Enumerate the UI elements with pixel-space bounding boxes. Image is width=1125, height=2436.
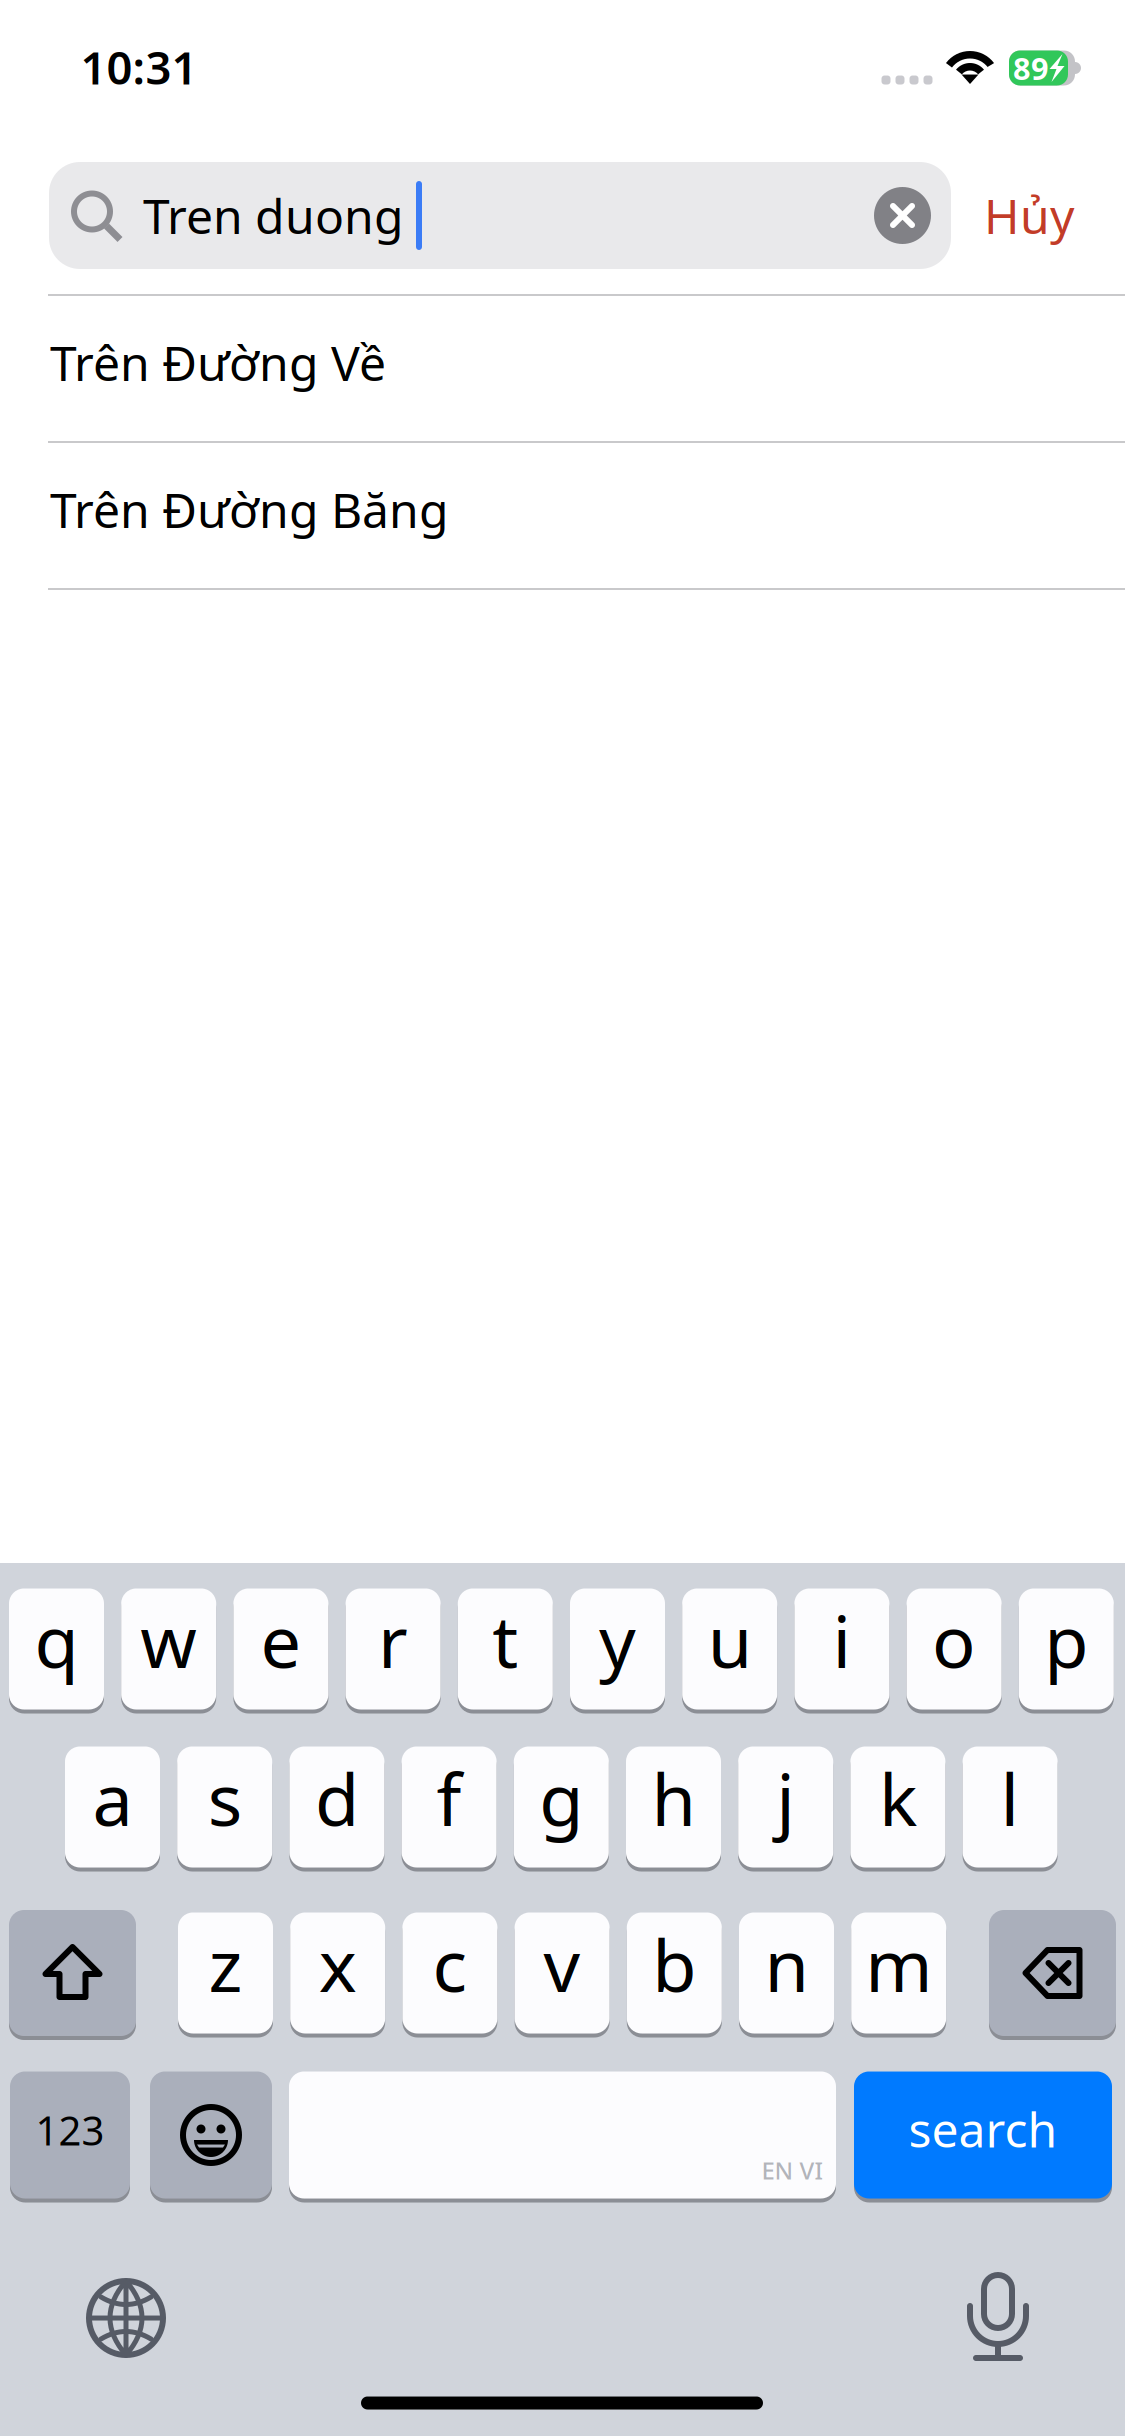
staticText: l [1001, 1750, 1020, 1846]
staticText: j [776, 1750, 795, 1846]
button[interactable]: l [963, 1744, 1058, 1869]
staticText: a [92, 1750, 132, 1846]
button[interactable]: e [233, 1586, 328, 1711]
button[interactable]: s [177, 1744, 272, 1869]
staticText: i [832, 1592, 851, 1688]
staticText: q [34, 1592, 78, 1688]
staticText: g [539, 1750, 583, 1846]
staticText: t [492, 1592, 518, 1688]
staticText: u [708, 1592, 752, 1688]
button[interactable]: m [851, 1910, 946, 2035]
button[interactable]: f [402, 1744, 497, 1869]
button[interactable]: b [627, 1910, 722, 2035]
staticText: s [208, 1750, 242, 1846]
staticText: EN VI [761, 2154, 822, 2186]
button[interactable]: v [515, 1910, 610, 2035]
button[interactable]: Delete [989, 1908, 1116, 2038]
button[interactable]: r [346, 1586, 441, 1711]
button[interactable]: i [794, 1586, 889, 1711]
staticText: c [432, 1916, 467, 2012]
button[interactable]: Trên Đường Băng [0, 443, 1125, 590]
staticText: h [651, 1750, 695, 1846]
button[interactable]: d [289, 1744, 384, 1869]
staticText: search [908, 2097, 1057, 2161]
button[interactable]: p [1019, 1586, 1114, 1711]
button[interactable]: Dictation [943, 2263, 1053, 2373]
staticText: Trên Đường Băng [50, 478, 449, 541]
button[interactable]: Shift [9, 1908, 136, 2038]
button[interactable]: Space [289, 2069, 836, 2200]
staticText: o [932, 1592, 976, 1688]
staticText: 89 [1013, 48, 1049, 88]
button[interactable]: search [854, 2069, 1112, 2200]
staticText: e [260, 1592, 301, 1688]
staticText: b [652, 1916, 696, 2012]
staticText: z [208, 1916, 242, 2012]
button[interactable]: w [121, 1586, 216, 1711]
button[interactable]: a [65, 1744, 160, 1869]
button[interactable]: Emoji [150, 2069, 272, 2200]
staticText: x [319, 1916, 357, 2012]
button[interactable]: Trên Đường Về [0, 296, 1125, 443]
button[interactable]: c [402, 1910, 497, 2035]
button[interactable]: q [9, 1586, 104, 1711]
button[interactable]: h [626, 1744, 721, 1869]
button[interactable]: Next keyboard [71, 2263, 181, 2373]
button[interactable]: u [682, 1586, 777, 1711]
staticText: Trên Đường Về [50, 331, 386, 394]
button[interactable]: x [290, 1910, 385, 2035]
staticText: Hủy [984, 184, 1074, 247]
button[interactable]: 123 [10, 2069, 130, 2200]
staticText: w [140, 1592, 197, 1688]
button[interactable]: t [458, 1586, 553, 1711]
button[interactable]: o [907, 1586, 1002, 1711]
button[interactable]: k [850, 1744, 945, 1869]
button[interactable]: y [570, 1586, 665, 1711]
staticText: Tren duong [143, 184, 404, 247]
staticText: v [544, 1916, 581, 2012]
staticText: 123 [35, 2103, 104, 2156]
staticText: d [315, 1750, 359, 1846]
staticText: f [437, 1750, 462, 1846]
staticText: p [1044, 1592, 1088, 1688]
button[interactable]: Hủy [951, 162, 1125, 269]
button[interactable]: n [739, 1910, 834, 2035]
staticText: m [865, 1916, 932, 2012]
button[interactable]: j [738, 1744, 833, 1869]
button[interactable]: Clear text [864, 162, 941, 269]
button[interactable]: g [514, 1744, 609, 1869]
button[interactable]: z [178, 1910, 273, 2035]
staticText: n [764, 1916, 808, 2012]
staticText: r [378, 1592, 408, 1688]
staticText: 10:31 [80, 37, 197, 97]
staticText: y [599, 1592, 636, 1688]
staticText: k [879, 1750, 917, 1846]
